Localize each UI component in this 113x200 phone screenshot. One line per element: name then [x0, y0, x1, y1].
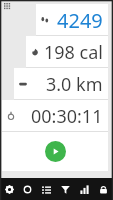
button[interactable]: Filter: [56, 178, 75, 200]
button[interactable]: Calories burned: [26, 36, 108, 68]
button[interactable]: Distance: [14, 68, 108, 100]
staticText: 4249: [57, 7, 103, 34]
button[interactable]: Apps: [1, 0, 13, 12]
button[interactable]: Statistics: [75, 178, 94, 200]
button[interactable]: Record: [18, 178, 37, 200]
button[interactable]: Lock: [94, 178, 113, 200]
button[interactable]: History list: [37, 178, 56, 200]
button[interactable]: Steps today: [36, 4, 108, 36]
button[interactable]: Start workout: [45, 141, 66, 162]
staticText: 3.0 km: [46, 72, 103, 97]
staticText: 198 cal: [44, 40, 103, 65]
button[interactable]: Duration: [2, 100, 108, 132]
button[interactable]: Settings: [0, 178, 18, 200]
staticText: 00:30:11: [31, 104, 103, 129]
